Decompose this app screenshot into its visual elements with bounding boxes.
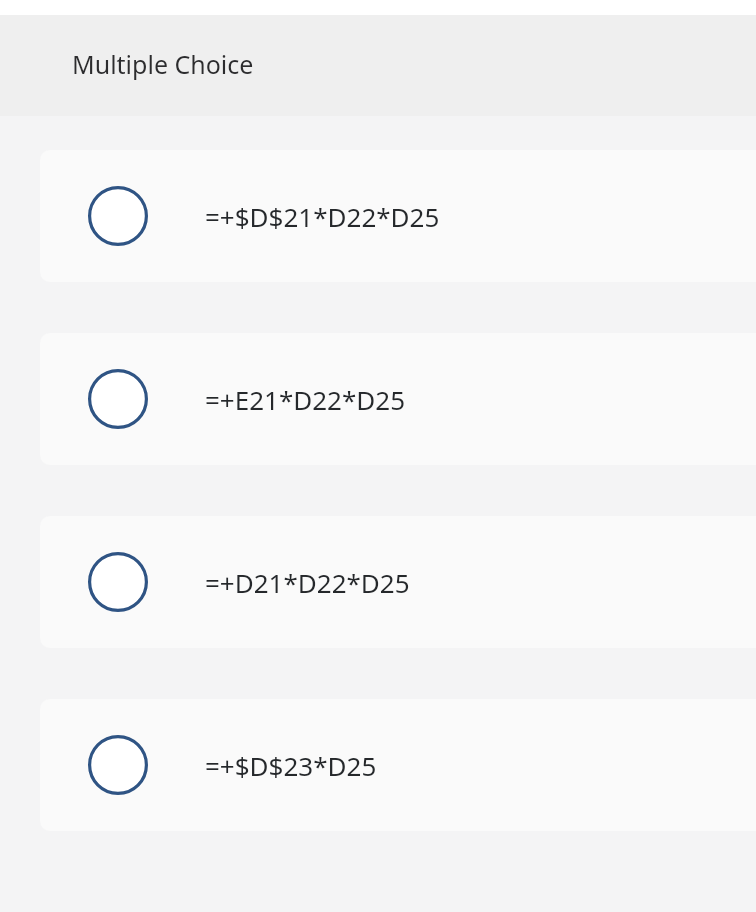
staticText: =+$D$21*D22*D25 bbox=[205, 199, 440, 234]
other: Select =+$D$21*D22*D25 bbox=[88, 186, 148, 246]
staticText: Multiple Choice bbox=[72, 47, 254, 81]
button[interactable]: Select =+D21*D22*D25 bbox=[40, 516, 756, 648]
staticText: =+D21*D22*D25 bbox=[205, 565, 410, 600]
staticText: =+$D$23*D25 bbox=[205, 748, 377, 783]
button[interactable]: Select =+E21*D22*D25 bbox=[40, 333, 756, 465]
button[interactable]: Select =+$D$23*D25 bbox=[40, 699, 756, 831]
other: Select =+E21*D22*D25 bbox=[88, 369, 148, 429]
other: Select =+D21*D22*D25 bbox=[88, 552, 148, 612]
other: Select =+$D$23*D25 bbox=[88, 735, 148, 795]
button[interactable]: Select =+$D$21*D22*D25 bbox=[40, 150, 756, 282]
staticText: =+E21*D22*D25 bbox=[205, 382, 406, 417]
